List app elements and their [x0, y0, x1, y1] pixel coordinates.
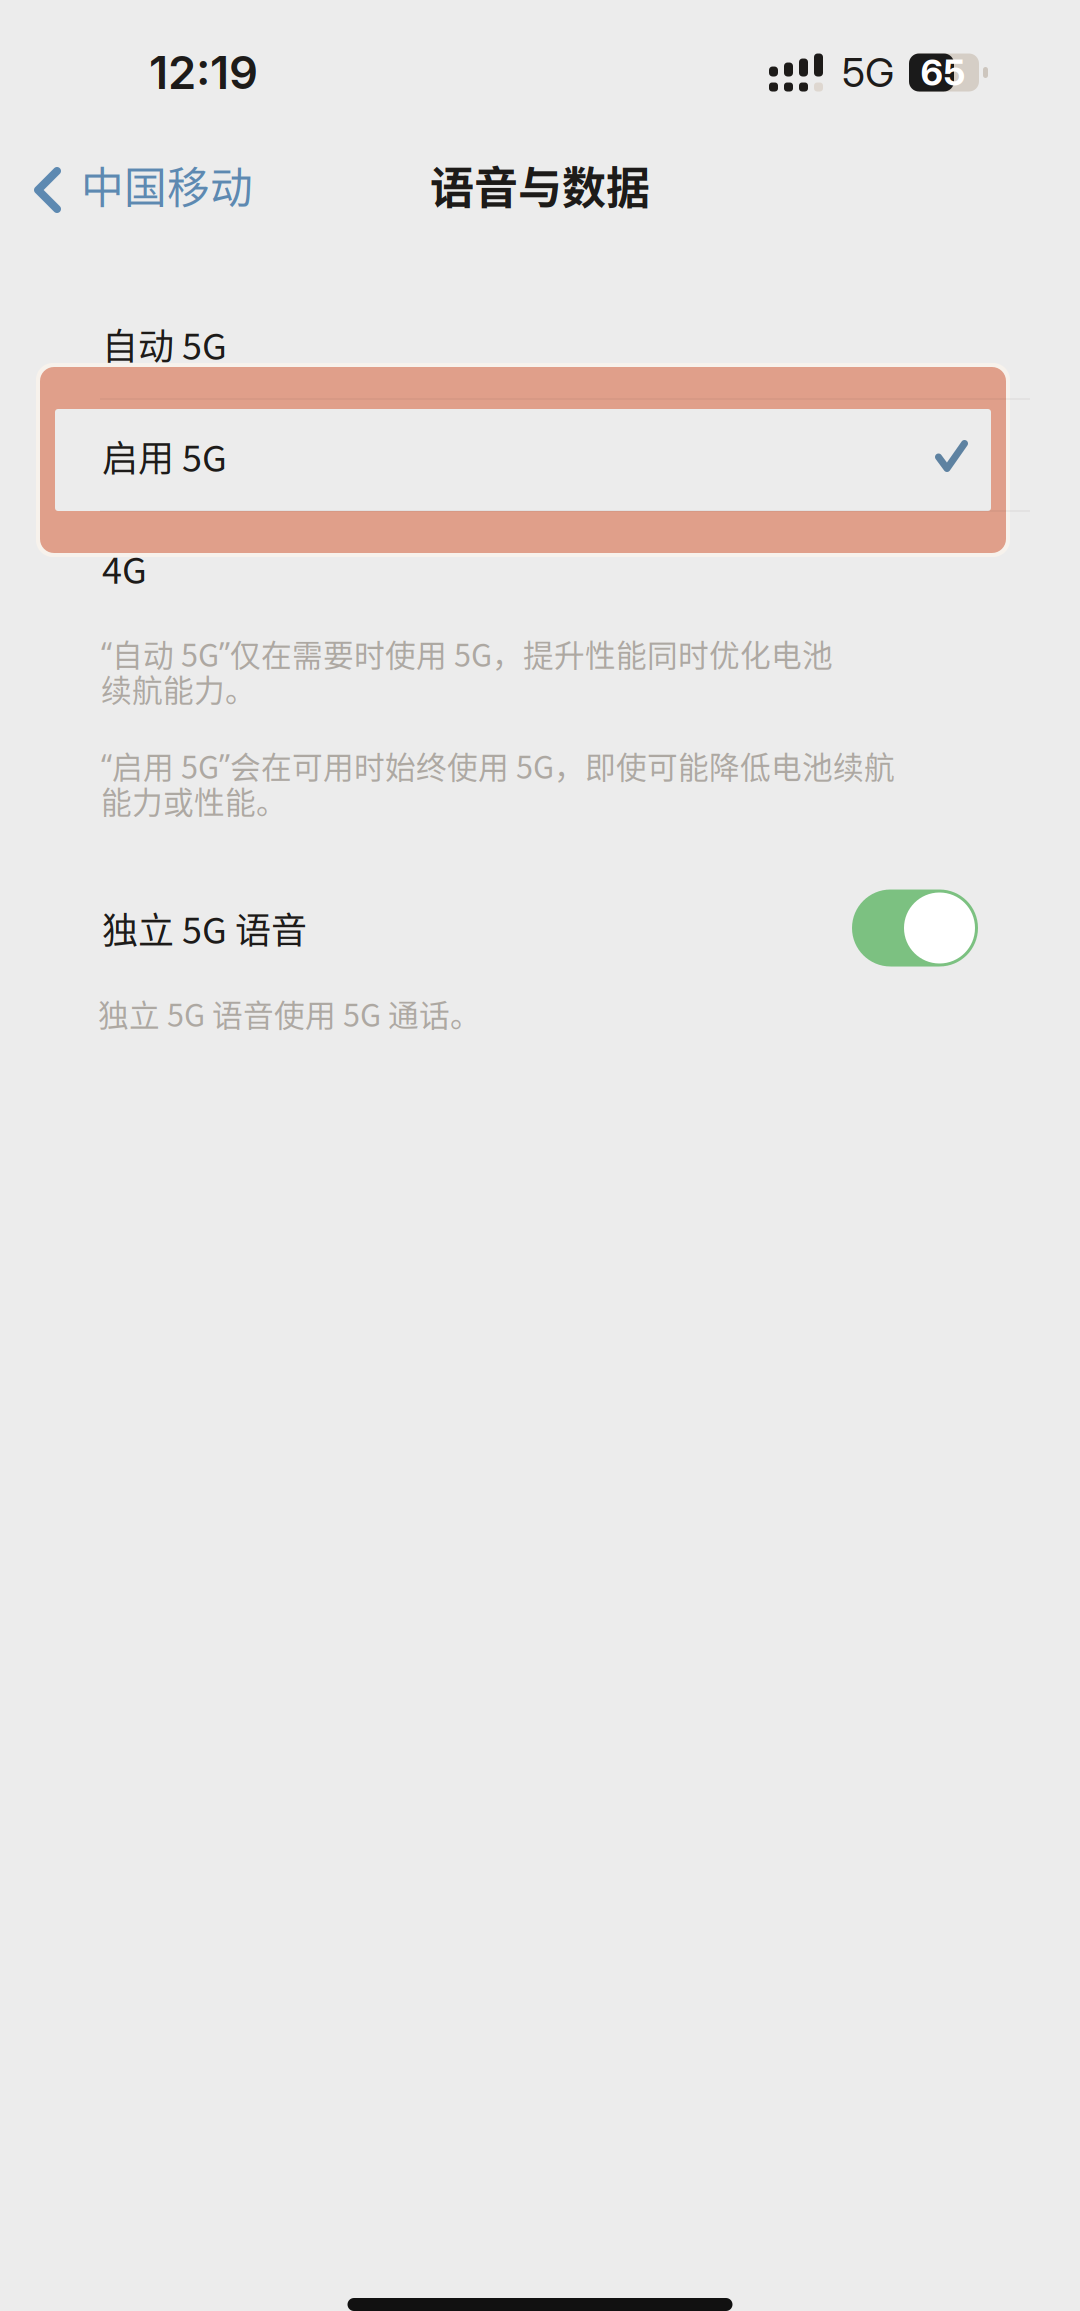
staticText: “启用 5G”会在可用时始终使用 5G，即使可能降低电池续航 — [101, 744, 895, 787]
staticText: 独立 5G 语音 — [102, 902, 307, 954]
staticText: 启用 5G — [102, 430, 227, 482]
staticText: 续航能力。 — [101, 666, 256, 711]
button[interactable]: 独立 5G 语音 — [0, 872, 1080, 984]
staticText: 语音与数据 — [430, 153, 650, 217]
button[interactable]: 启用 5G — [0, 400, 1080, 512]
staticText: 5G — [842, 48, 894, 97]
button[interactable]: 自动 5G — [0, 288, 1080, 400]
staticText: 能力或性能。 — [101, 778, 287, 823]
staticText: 中国移动 — [81, 154, 253, 216]
staticText: 独立 5G 语音使用 5G 通话。 — [98, 991, 481, 1036]
staticText: 自动 5G — [102, 318, 227, 370]
button[interactable]: 4G — [0, 512, 1080, 624]
staticText: “自动 5G”仅在需要时使用 5G，提升性能同时优化电池 — [101, 632, 833, 675]
staticText: 4G — [102, 542, 147, 594]
staticText: 65 — [920, 51, 965, 94]
button[interactable]: 中国移动 — [0, 138, 275, 232]
staticText: 12:19 — [149, 45, 258, 100]
